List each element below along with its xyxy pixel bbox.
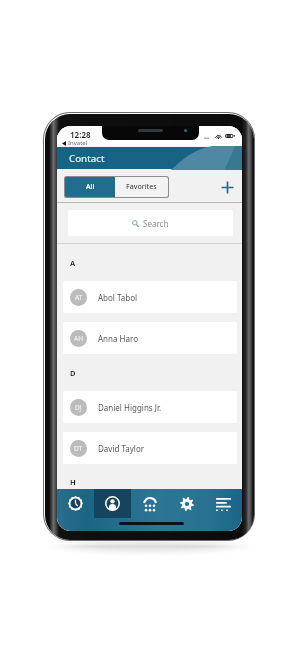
button[interactable]: DT: [63, 432, 237, 464]
staticText: Daniel Higgins Jr.: [98, 402, 162, 413]
staticText: DT: [74, 444, 83, 453]
staticText: Abol Tabol: [98, 292, 138, 303]
staticText: AH: [74, 334, 83, 343]
staticText: D: [70, 368, 76, 378]
button[interactable]: Recents: [57, 489, 94, 518]
staticText: Contact: [69, 152, 105, 165]
staticText: Search: [143, 218, 169, 229]
staticText: 12:28: [70, 129, 91, 140]
staticText: All: [86, 182, 95, 192]
button[interactable]: All: [65, 177, 115, 197]
button[interactable]: Search: [68, 210, 233, 236]
button[interactable]: DJ: [63, 391, 237, 423]
staticText: Anna Haro: [98, 333, 138, 344]
staticText: H: [70, 477, 76, 487]
button[interactable]: Settings: [168, 489, 205, 518]
staticText: A: [70, 258, 76, 268]
button[interactable]: Add contact: [216, 176, 238, 198]
button[interactable]: Keypad: [131, 489, 168, 518]
button[interactable]: More: [205, 489, 242, 518]
button[interactable]: AH: [63, 322, 237, 354]
staticText: Invatel: [68, 139, 88, 147]
staticText: AT: [75, 293, 83, 302]
staticText: Favorites: [126, 182, 157, 192]
button[interactable]: AT: [63, 281, 237, 313]
staticText: DJ: [75, 403, 82, 412]
button[interactable]: Contacts: [94, 489, 131, 518]
button[interactable]: Favorites: [115, 177, 168, 197]
staticText: David Taylor: [98, 443, 145, 454]
